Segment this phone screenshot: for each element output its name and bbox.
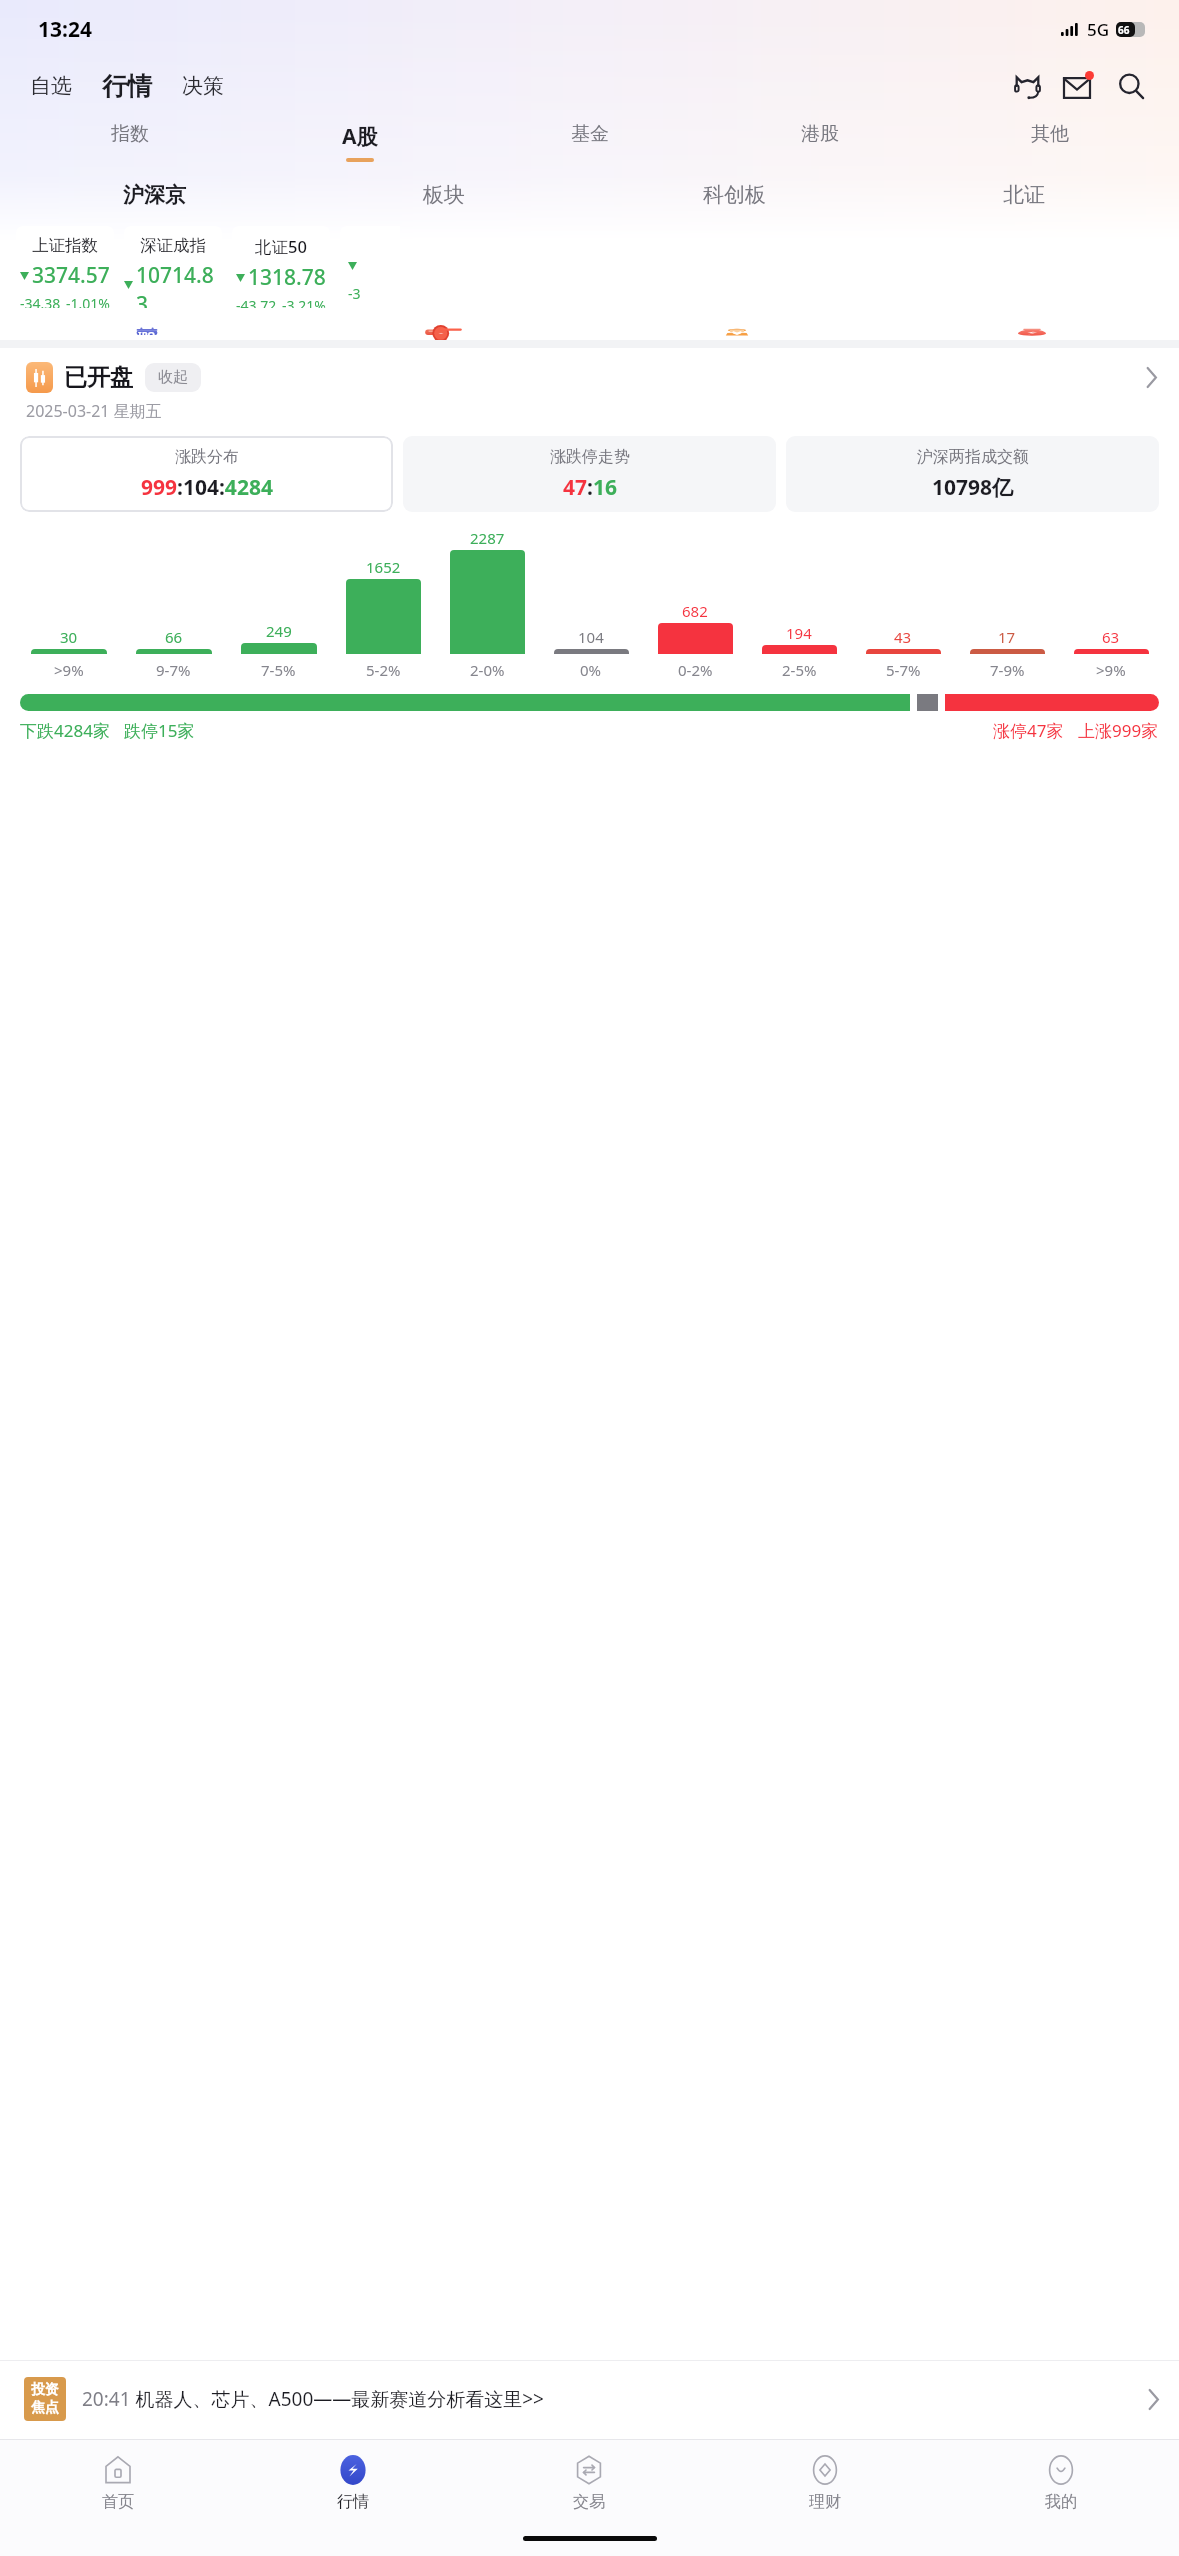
staticText: NEW xyxy=(441,334,460,336)
button[interactable]: 决策 xyxy=(178,67,228,105)
staticText: 43 xyxy=(894,627,912,647)
button[interactable]: 上证指数 xyxy=(16,226,114,308)
staticText: 沪深两指成交额 xyxy=(917,447,1029,467)
staticText: 深证成指 xyxy=(140,235,206,256)
staticText: 7-5% xyxy=(261,660,296,680)
button[interactable]: -3 xyxy=(340,226,400,308)
staticText: 北证 xyxy=(1003,182,1045,208)
staticText: 0% xyxy=(580,660,602,680)
button[interactable]: 沪深两指成交额 xyxy=(786,436,1159,512)
staticText: 上涨999家 xyxy=(1078,719,1159,742)
staticText: -34.38 xyxy=(20,294,61,308)
staticText: 3374.57 xyxy=(32,261,110,290)
button[interactable]: NEW xyxy=(294,324,589,340)
staticText: 5-7% xyxy=(886,660,921,680)
staticText: 999:104:4284 xyxy=(141,473,273,502)
staticText: >9% xyxy=(1096,660,1126,680)
button[interactable]: 已开盘 xyxy=(0,348,1179,422)
staticText: 9-7% xyxy=(156,660,191,680)
button[interactable]: 涨跌停走势 xyxy=(403,436,776,512)
staticText: 指数 xyxy=(111,122,149,146)
staticText: 104 xyxy=(578,627,604,647)
button[interactable]: 指数 xyxy=(14,114,245,163)
staticText: 涨跌分布 xyxy=(175,447,239,467)
staticText: 收起 xyxy=(158,368,188,387)
staticText: 跌停15家 xyxy=(124,719,195,742)
button[interactable]: 其他 xyxy=(935,114,1165,163)
staticText: 66 xyxy=(1118,23,1130,37)
staticText: 20:41 机器人、芯片、A500——最新赛道分析看这里>> xyxy=(82,2386,1138,2412)
button[interactable]: 搜索 xyxy=(1109,64,1153,108)
button[interactable]: 港股 xyxy=(705,114,935,163)
staticText: 194 xyxy=(786,623,812,643)
staticText: 2-0% xyxy=(470,660,505,680)
button[interactable]: 交易 xyxy=(471,2450,707,2516)
staticText: -3 xyxy=(348,284,361,303)
staticText: 首页 xyxy=(102,2492,134,2512)
button[interactable]: 行情 xyxy=(235,2450,471,2516)
staticText: 焦点 xyxy=(31,2399,59,2417)
staticText: 10798亿 xyxy=(932,473,1014,502)
staticText: 自选 xyxy=(30,73,72,99)
staticText: 科创板 xyxy=(703,182,766,208)
staticText: -1.01% xyxy=(66,294,110,308)
staticText: 1652 xyxy=(366,557,401,577)
staticText: 10714.83 xyxy=(136,261,222,308)
staticText: 5-2% xyxy=(366,660,401,680)
staticText: 决策 xyxy=(182,73,224,99)
button[interactable]: 工具锦囊 xyxy=(884,324,1179,340)
staticText: 北证50 xyxy=(255,235,307,258)
staticText: 涨跌停走势 xyxy=(550,447,630,467)
button[interactable]: 基金 xyxy=(475,114,705,163)
staticText: 2025-03-21 星期五 xyxy=(26,400,162,422)
button[interactable]: 投资 xyxy=(0,2361,1179,2439)
staticText: -43.72 xyxy=(236,296,277,308)
staticText: 66 xyxy=(165,627,183,647)
staticText: 已开盘 xyxy=(64,363,133,392)
staticText: 7-9% xyxy=(990,660,1025,680)
staticText: 30 xyxy=(60,627,78,647)
button[interactable]: 深证成指 xyxy=(124,226,222,308)
staticText: 行情 xyxy=(337,2492,369,2512)
staticText: 板块 xyxy=(423,182,465,208)
staticText: A股 xyxy=(342,122,378,151)
staticText: 下跌4284家 xyxy=(20,719,110,742)
staticText: IPO xyxy=(138,328,156,336)
button[interactable]: 消息 xyxy=(1057,64,1101,108)
button[interactable]: 收起 xyxy=(145,363,201,392)
staticText: -3.21% xyxy=(282,296,326,308)
staticText: 2287 xyxy=(470,528,505,548)
staticText: 17 xyxy=(998,627,1016,647)
button[interactable]: A股 xyxy=(245,114,475,168)
button[interactable]: 北证50 xyxy=(232,226,330,308)
staticText: 5G xyxy=(1087,18,1110,41)
staticText: 0-2% xyxy=(678,660,713,680)
staticText: 理财 xyxy=(809,2492,841,2512)
button[interactable]: 客服 xyxy=(1005,64,1049,108)
button[interactable]: 自选 xyxy=(26,67,76,105)
staticText: 上证指数 xyxy=(32,235,98,256)
staticText: 涨停47家 xyxy=(993,719,1064,742)
staticText: 交易 xyxy=(573,2492,605,2512)
staticText: 沪深京 xyxy=(123,182,186,208)
button[interactable]: IPO xyxy=(0,324,294,340)
button[interactable]: 北证 xyxy=(879,174,1169,216)
button[interactable]: 涨跌分布 xyxy=(20,436,393,512)
button[interactable]: 投顾广场 xyxy=(589,324,884,340)
staticText: 其他 xyxy=(1031,122,1069,146)
staticText: 行情 xyxy=(102,71,152,102)
staticText: 基金 xyxy=(571,122,609,146)
staticText: 63 xyxy=(1102,627,1120,647)
button[interactable]: 科创板 xyxy=(589,174,879,216)
button[interactable]: 行情 xyxy=(98,67,156,106)
staticText: 682 xyxy=(682,601,708,621)
button[interactable]: 板块 xyxy=(299,174,589,216)
button[interactable]: 理财 xyxy=(707,2450,943,2516)
staticText: 1318.78 xyxy=(248,263,326,292)
button[interactable]: 我的 xyxy=(943,2450,1179,2516)
button[interactable]: 首页 xyxy=(0,2450,235,2516)
button[interactable]: 沪深京 xyxy=(10,174,299,216)
staticText: 47:16 xyxy=(563,473,617,502)
staticText: 投资 xyxy=(31,2381,59,2399)
staticText: 2-5% xyxy=(782,660,817,680)
